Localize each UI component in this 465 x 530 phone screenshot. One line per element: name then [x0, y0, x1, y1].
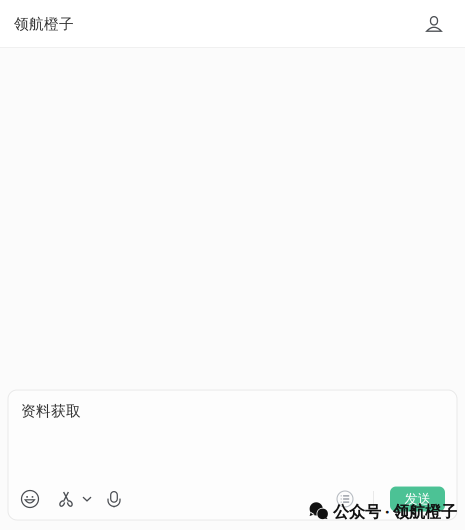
button[interactable]: Profile	[417, 7, 451, 41]
staticText: 发送	[404, 491, 430, 507]
button[interactable]: Voice input	[101, 486, 127, 512]
button[interactable]: Menu	[332, 486, 358, 512]
button[interactable]: Shortcuts	[53, 486, 79, 512]
button[interactable]: 发送	[390, 486, 445, 511]
staticText: 公众号 · 领航橙子	[333, 501, 457, 522]
button[interactable]: More shortcuts	[79, 486, 95, 512]
staticText: 领航橙子	[14, 15, 74, 33]
button[interactable]: Emoji	[17, 486, 43, 512]
staticText: 资料获取	[21, 402, 81, 420]
